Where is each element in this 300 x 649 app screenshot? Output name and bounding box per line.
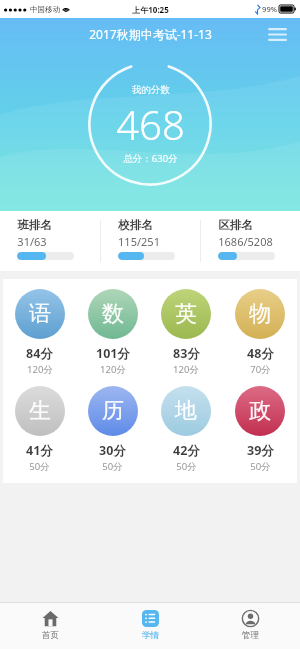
button[interactable]: 地 [149, 384, 223, 475]
staticText: 30分 [99, 442, 126, 459]
staticText: 84分 [26, 345, 53, 362]
staticText: 地 [175, 397, 197, 425]
staticText: 1686/5208 [218, 234, 273, 249]
staticText: 50分 [102, 460, 123, 473]
staticText: 50分 [29, 460, 50, 473]
staticText: 468 [116, 97, 185, 151]
staticText: 政 [249, 397, 271, 425]
staticText: 31/63 [17, 234, 47, 249]
staticText: 上午10:25 [132, 4, 169, 15]
staticText: 我的分数 [132, 84, 170, 96]
staticText: 区排名 [218, 218, 253, 232]
staticText: 39分 [247, 442, 274, 459]
button[interactable]: 班排名 [0, 211, 100, 271]
staticText: 学情 [142, 630, 159, 641]
staticText: 首页 [42, 630, 59, 641]
button[interactable]: 学情 [100, 602, 200, 649]
staticText: 2017秋期中考试-11-13 [89, 26, 212, 42]
button[interactable]: 管理 [200, 602, 300, 649]
staticText: 总分：630分 [123, 152, 178, 165]
staticText: 115/251 [118, 234, 160, 249]
staticText: 70分 [250, 363, 271, 376]
staticText: 生 [29, 397, 51, 425]
staticText: 历 [102, 397, 124, 425]
button[interactable]: 首页 [0, 602, 100, 649]
button[interactable]: 数 [76, 287, 149, 378]
staticText: 管理 [242, 630, 259, 641]
button[interactable]: 生 [3, 384, 76, 475]
button[interactable]: 语 [3, 287, 76, 378]
staticText: 120分 [100, 363, 126, 376]
staticText: 班排名 [17, 218, 52, 232]
staticText: 120分 [173, 363, 199, 376]
button[interactable]: 物 [223, 287, 297, 378]
staticText: 42分 [173, 442, 200, 459]
staticText: 48分 [247, 345, 274, 362]
staticText: 41分 [26, 442, 53, 459]
button[interactable]: 政 [223, 384, 297, 475]
button[interactable]: 英 [149, 287, 223, 378]
button[interactable]: 历 [76, 384, 149, 475]
staticText: 101分 [96, 345, 130, 362]
staticText: 英 [175, 300, 197, 328]
staticText: 50分 [176, 460, 197, 473]
staticText: 校排名 [118, 218, 153, 232]
staticText: 83分 [173, 345, 200, 362]
staticText: 数 [102, 300, 124, 328]
staticText: 99% [262, 4, 277, 14]
button[interactable]: 区排名 [201, 211, 300, 271]
button[interactable]: Menu [260, 20, 294, 48]
staticText: 50分 [250, 460, 271, 473]
button[interactable]: 校排名 [101, 211, 200, 271]
staticText: 中国移动 [30, 5, 60, 14]
staticText: 语 [29, 300, 51, 328]
staticText: 物 [249, 300, 271, 328]
staticText: 120分 [27, 363, 53, 376]
